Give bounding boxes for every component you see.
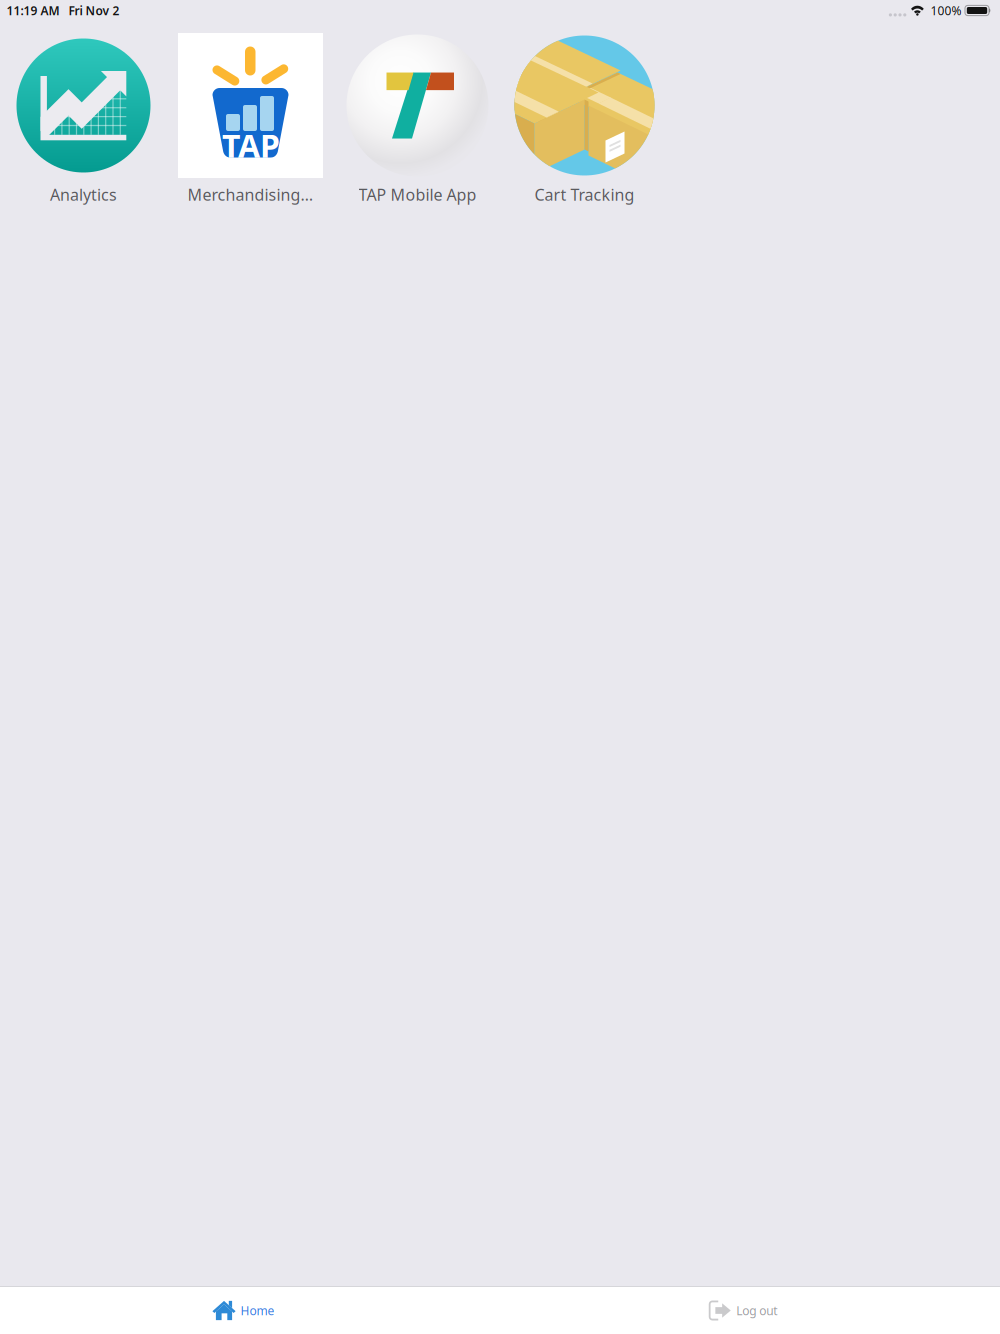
staticText: Log out (736, 1302, 777, 1318)
staticText: 11:19 AM (6, 2, 59, 18)
staticText: Home (241, 1302, 275, 1318)
button[interactable]: Log out (500, 1287, 1000, 1334)
button[interactable]: Cart Tracking (501, 33, 668, 207)
staticText: Merchandising… (187, 184, 313, 205)
staticText: TAP Mobile App (358, 184, 476, 205)
staticText: Fri Nov 2 (68, 2, 119, 18)
staticText: Cart Tracking (534, 184, 634, 205)
button[interactable]: Analytics (0, 33, 167, 207)
button[interactable]: TAP (167, 33, 334, 207)
button[interactable]: TAP Mobile App (334, 33, 501, 207)
staticText: Analytics (50, 184, 117, 205)
staticText: 100% (930, 2, 961, 18)
staticText: TAP (222, 124, 280, 166)
button[interactable]: Home (0, 1287, 500, 1334)
